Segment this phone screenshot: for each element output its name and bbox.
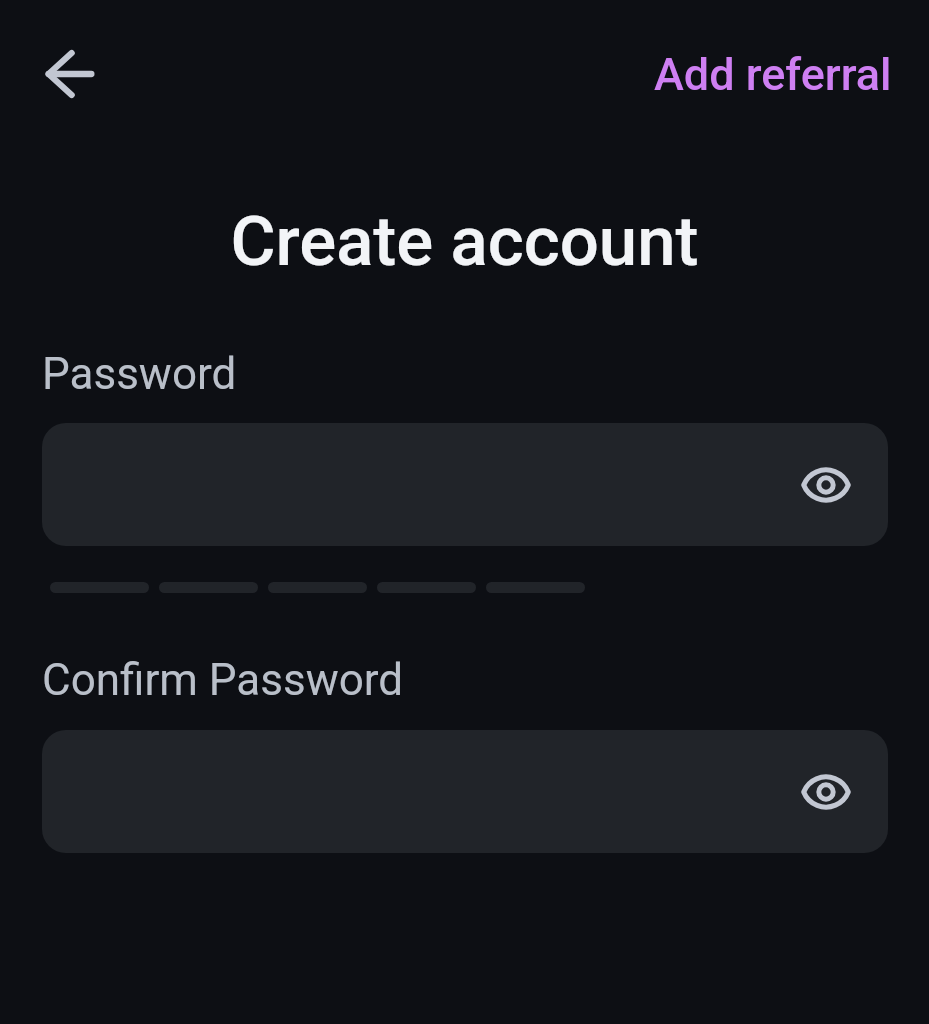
staticText: Create account xyxy=(0,201,929,282)
staticText: Password xyxy=(42,348,237,400)
staticText: Add referral xyxy=(654,48,892,101)
button[interactable]: Back xyxy=(38,42,102,106)
staticText: Confirm Password xyxy=(42,654,404,706)
button[interactable]: Password xyxy=(42,423,888,546)
button[interactable]: Confirm Password xyxy=(42,730,888,853)
button[interactable]: Show password xyxy=(794,453,858,517)
button[interactable]: Add referral xyxy=(640,36,906,113)
button[interactable]: Show password xyxy=(794,760,858,824)
